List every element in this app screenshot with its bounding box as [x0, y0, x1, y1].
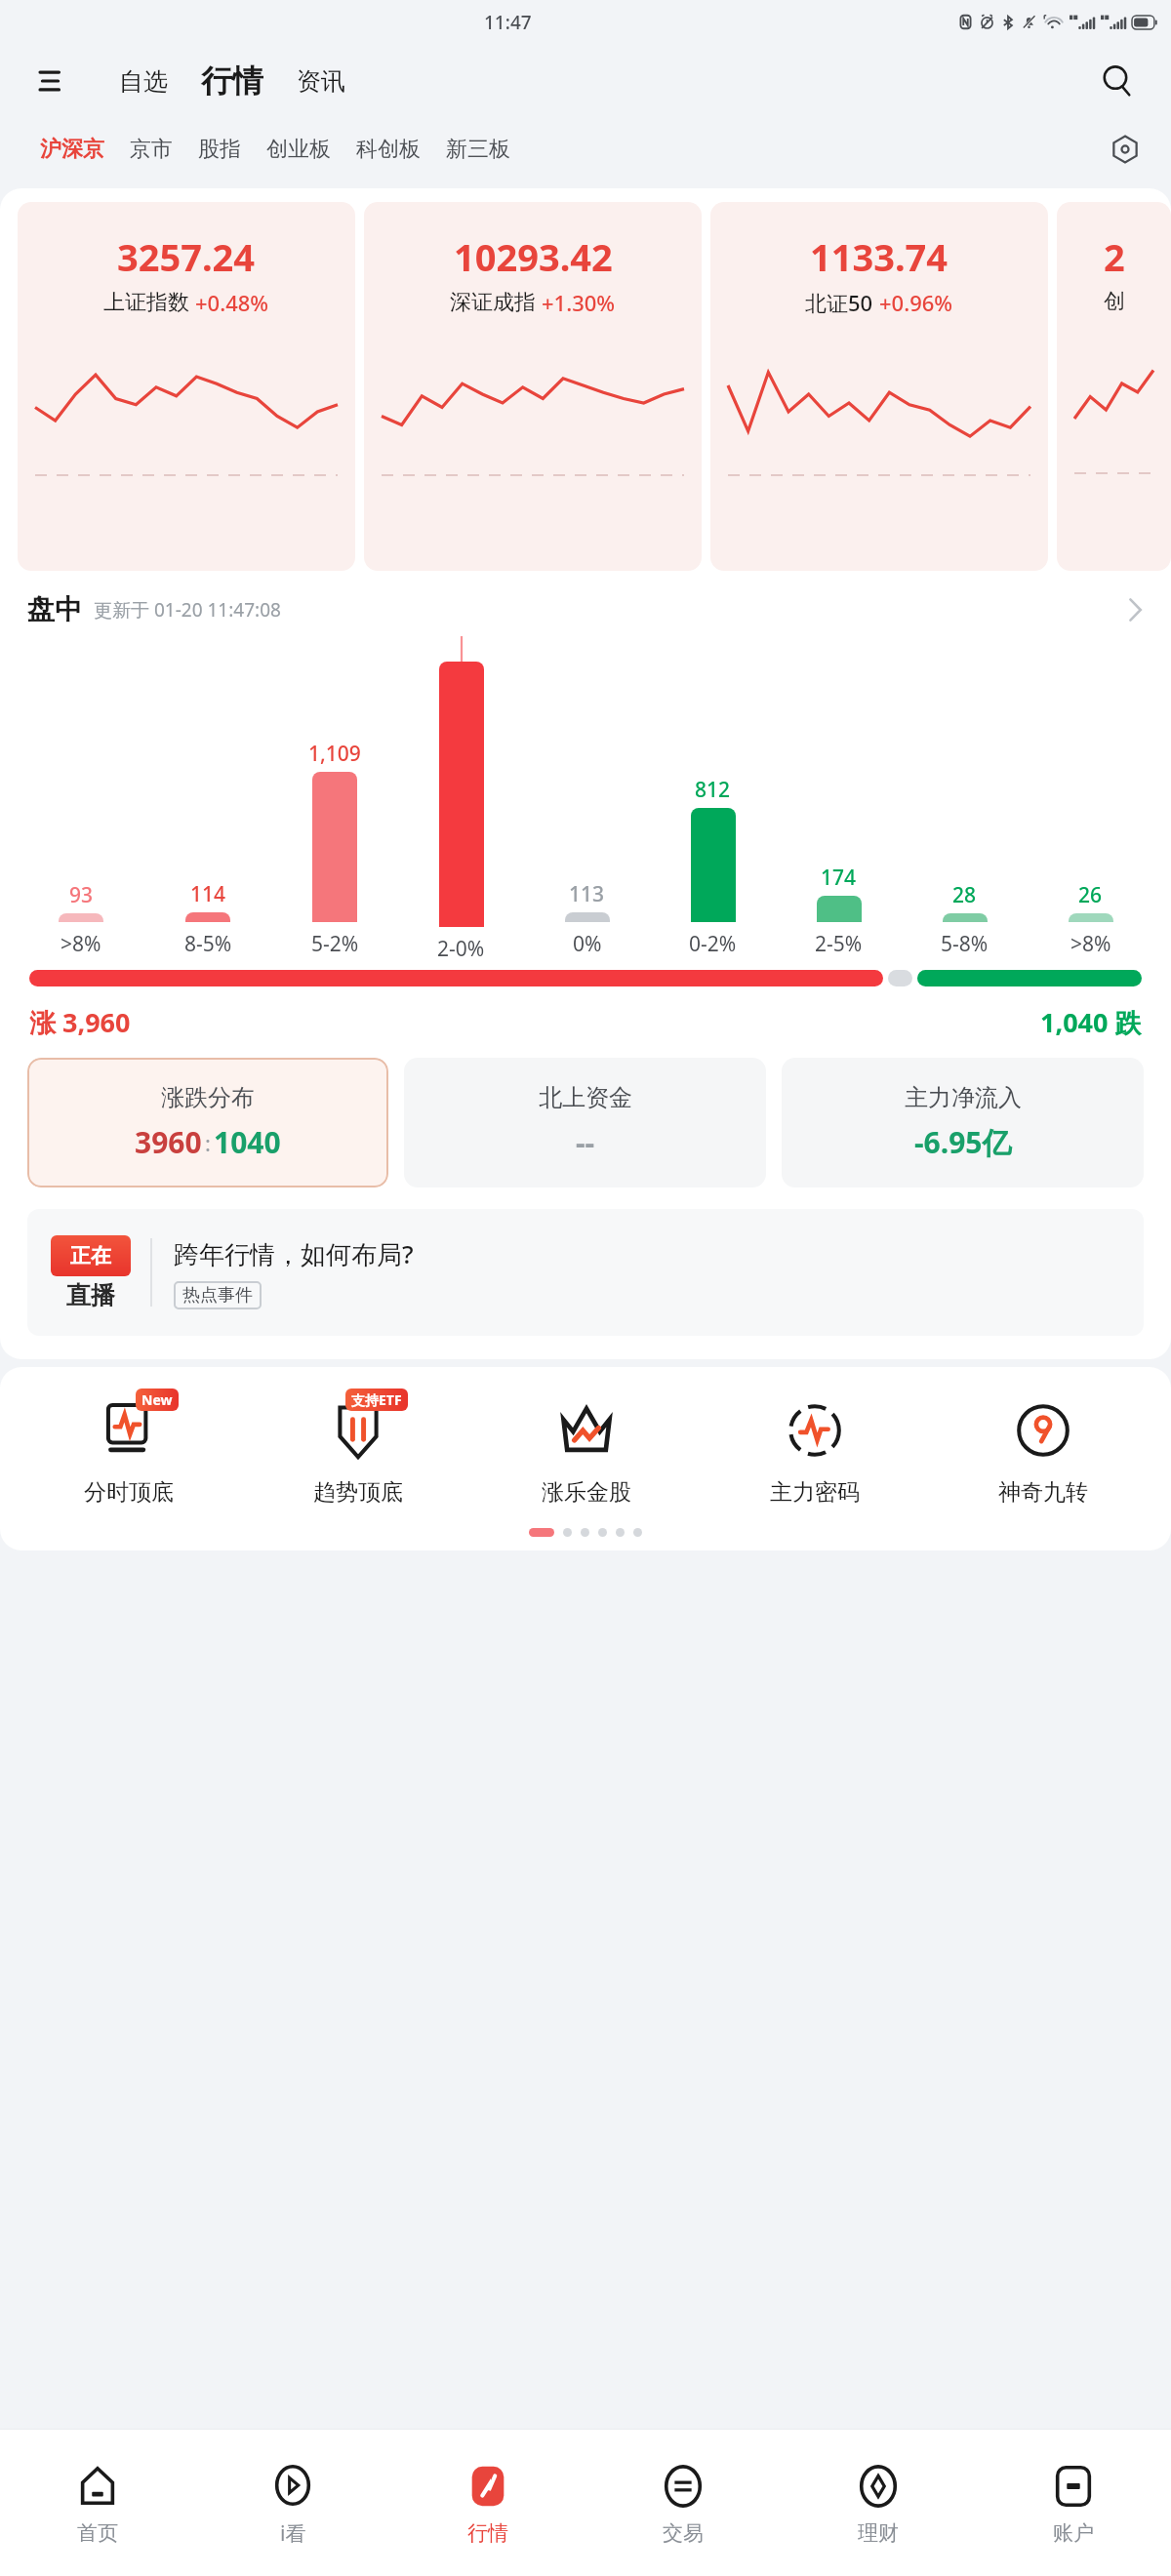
- button[interactable]: 资讯: [285, 59, 357, 104]
- button[interactable]: 交易: [585, 2430, 781, 2576]
- staticText: 主力密码: [770, 1478, 860, 1507]
- staticText: 直播: [66, 1280, 115, 1310]
- button[interactable]: 涨跌分布: [27, 1058, 388, 1187]
- staticText: 行情: [467, 2520, 508, 2546]
- staticText: +0.48%: [195, 288, 269, 317]
- staticText: 涨乐金股: [542, 1478, 631, 1507]
- button[interactable]: 行情: [189, 58, 275, 104]
- button[interactable]: 京市: [117, 128, 185, 171]
- staticText: 跨年行情，如何布局?: [174, 1236, 414, 1271]
- button[interactable]: 北上资金: [404, 1058, 766, 1187]
- staticText: 0%: [573, 930, 602, 958]
- staticText: 首页: [77, 2520, 118, 2546]
- staticText: 114: [190, 880, 226, 908]
- button[interactable]: 科创板: [343, 128, 433, 171]
- staticText: 28: [952, 881, 977, 909]
- staticText: 账户: [1053, 2520, 1094, 2546]
- staticText: 3960: [135, 1122, 202, 1162]
- staticText: 趋势顶底: [313, 1478, 403, 1507]
- staticText: 5-2%: [311, 930, 359, 958]
- button[interactable]: Settings: [1101, 125, 1150, 174]
- staticText: 正在: [70, 1243, 111, 1268]
- button[interactable]: 涨乐金股: [472, 1392, 701, 1507]
- staticText: 26: [1078, 881, 1103, 909]
- staticText: i看: [280, 2519, 306, 2548]
- staticText: 自选: [119, 66, 168, 97]
- button[interactable]: Menu: [29, 59, 74, 103]
- staticText: >8%: [61, 930, 101, 958]
- button[interactable]: 沪深京: [27, 128, 117, 171]
- staticText: +0.96%: [879, 288, 953, 317]
- staticText: 812: [695, 776, 731, 804]
- staticText: 支持ETF: [351, 1390, 402, 1409]
- button[interactable]: 盘中: [0, 592, 1171, 626]
- staticText: 11:47: [484, 10, 532, 35]
- staticText: 股指: [198, 136, 241, 163]
- button[interactable]: 股指: [185, 128, 254, 171]
- staticText: 1,109: [308, 740, 361, 768]
- staticText: 主力净流入: [905, 1083, 1022, 1112]
- staticText: :: [205, 1128, 211, 1157]
- button[interactable]: 神奇九转: [929, 1392, 1157, 1507]
- staticText: 更新于 01-20 11:47:08: [94, 597, 281, 623]
- button[interactable]: 新三板: [433, 128, 523, 171]
- staticText: 分时顶底: [84, 1478, 174, 1507]
- button[interactable]: 2: [1057, 202, 1171, 571]
- button[interactable]: 行情: [390, 2430, 585, 2576]
- staticText: 科创板: [356, 136, 421, 163]
- button[interactable]: 支持ETF: [243, 1392, 472, 1507]
- staticText: 热点事件: [182, 1284, 253, 1307]
- staticText: 新三板: [446, 136, 510, 163]
- staticText: 神奇九转: [998, 1478, 1088, 1507]
- staticText: 交易: [663, 2520, 704, 2546]
- staticText: 174: [821, 864, 857, 892]
- button[interactable]: 1133.74: [710, 202, 1048, 571]
- staticText: 上证指数: [103, 289, 189, 316]
- staticText: +1.30%: [542, 288, 616, 317]
- staticText: 深证成指: [450, 289, 536, 316]
- button[interactable]: 自选: [107, 59, 180, 104]
- button[interactable]: Search: [1093, 57, 1142, 105]
- button[interactable]: 正在: [27, 1209, 1144, 1336]
- button[interactable]: 账户: [976, 2430, 1171, 2576]
- staticText: 北证50: [805, 288, 873, 317]
- staticText: 理财: [858, 2520, 899, 2546]
- button[interactable]: 主力净流入: [782, 1058, 1144, 1187]
- staticText: 创: [1104, 288, 1125, 315]
- staticText: 资讯: [297, 66, 345, 97]
- button[interactable]: 理财: [781, 2430, 976, 2576]
- button[interactable]: 10293.42: [364, 202, 702, 571]
- staticText: 2-0%: [437, 935, 485, 958]
- button[interactable]: 3257.24: [18, 202, 355, 571]
- staticText: 0-2%: [689, 930, 737, 958]
- staticText: -6.95亿: [914, 1122, 1012, 1162]
- staticText: 北上资金: [539, 1083, 632, 1112]
- staticText: New: [141, 1390, 173, 1409]
- staticText: 2: [1104, 231, 1125, 282]
- button[interactable]: i看: [195, 2430, 390, 2576]
- staticText: 创业板: [266, 136, 331, 163]
- staticText: 1133.74: [810, 231, 949, 282]
- staticText: 涨跌分布: [161, 1083, 255, 1112]
- staticText: 113: [569, 880, 605, 908]
- button[interactable]: New: [14, 1392, 243, 1507]
- staticText: 2-5%: [815, 930, 863, 958]
- staticText: 1,040 跌: [1040, 1004, 1142, 1040]
- button[interactable]: 创业板: [254, 128, 343, 171]
- button[interactable]: 首页: [0, 2430, 195, 2576]
- staticText: 10293.42: [454, 231, 613, 282]
- staticText: 行情: [201, 61, 263, 101]
- staticText: 3257.24: [117, 231, 256, 282]
- staticText: 1040: [214, 1122, 281, 1162]
- staticText: 93: [69, 881, 94, 909]
- staticText: >8%: [1070, 930, 1111, 958]
- staticText: 沪深京: [40, 136, 104, 163]
- staticText: 8-5%: [184, 930, 232, 958]
- staticText: --: [576, 1122, 595, 1162]
- button[interactable]: 主力密码: [701, 1392, 929, 1507]
- staticText: 5-8%: [941, 930, 989, 958]
- staticText: 盘中: [27, 592, 82, 626]
- staticText: 京市: [130, 136, 173, 163]
- staticText: 涨 3,960: [29, 1004, 131, 1040]
